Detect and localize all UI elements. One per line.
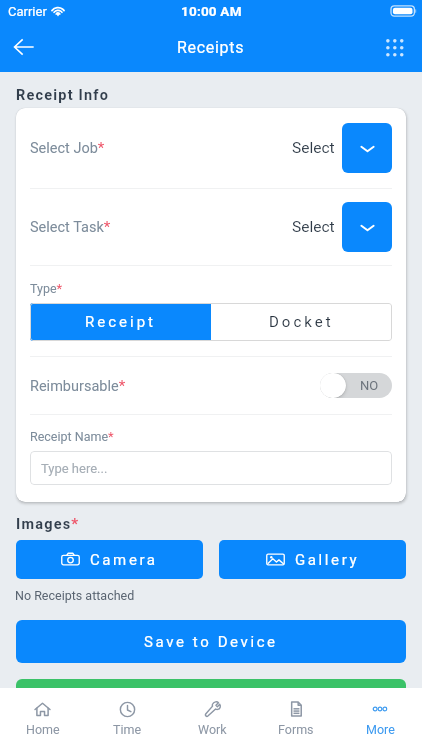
staticText: Receipt Name* (30, 429, 114, 444)
button[interactable]: Camera (16, 540, 203, 579)
button[interactable]: Select Job* (16, 108, 406, 188)
staticText: Carrier (8, 4, 47, 19)
staticText: Save to Device (144, 633, 278, 651)
button[interactable]: Work (170, 688, 254, 750)
staticText: Select (292, 218, 335, 236)
staticText: 10:00 AM (181, 3, 242, 19)
button[interactable]: Forms (254, 688, 338, 750)
staticText: Images* (16, 515, 80, 533)
staticText: Receipt Info (16, 87, 110, 104)
staticText: Select (292, 139, 335, 157)
staticText: Type* (30, 281, 63, 296)
staticText: Reimbursable* (30, 377, 126, 395)
staticText: NO (360, 378, 379, 393)
staticText: Submit (180, 692, 243, 710)
staticText: Select Task* (30, 218, 111, 236)
staticText: No Receipts attached (15, 588, 135, 603)
button[interactable]: Select Task* (16, 189, 406, 265)
staticText: Home (26, 722, 60, 737)
button[interactable]: Home (0, 688, 85, 750)
staticText: Receipts (177, 38, 245, 57)
button[interactable]: More (338, 688, 422, 750)
button[interactable]: NO (320, 373, 392, 398)
staticText: More (366, 722, 395, 737)
staticText: Camera (90, 551, 158, 569)
button[interactable]: Type here... (30, 451, 392, 485)
button[interactable]: Submit (16, 679, 406, 722)
staticText: Gallery (295, 551, 360, 569)
staticText: Time (113, 722, 142, 737)
button[interactable]: Save to Device (16, 620, 406, 663)
button[interactable]: Apps menu (372, 25, 416, 69)
button[interactable]: Gallery (219, 540, 406, 579)
staticText: Forms (278, 722, 314, 737)
button[interactable]: Docket (211, 303, 392, 341)
staticText: Select Job* (30, 139, 105, 157)
button[interactable]: Receipt (30, 303, 211, 341)
button[interactable]: Back (2, 25, 46, 69)
button[interactable]: Time (85, 688, 170, 750)
staticText: Docket (269, 313, 334, 331)
staticText: Receipt (85, 313, 156, 331)
staticText: Work (198, 722, 227, 737)
staticText: Type here... (41, 461, 108, 476)
